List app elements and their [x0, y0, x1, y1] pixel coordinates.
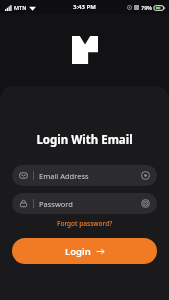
- staticText: Forgot password?: [57, 219, 113, 228]
- button[interactable]: Forgot password?: [12, 219, 157, 228]
- button[interactable]: Password: [12, 193, 157, 214]
- other: Clear email: [141, 171, 150, 180]
- staticText: MTN: [14, 4, 27, 11]
- staticText: 79%: [141, 4, 152, 11]
- other: Password: [19, 199, 28, 208]
- button[interactable]: Login: [12, 238, 157, 264]
- staticText: Login: [65, 245, 91, 258]
- staticText: Password: [39, 199, 141, 209]
- staticText: 3:43 PM: [73, 3, 96, 11]
- other: Email: [19, 171, 28, 180]
- staticText: Login With Email: [12, 132, 157, 148]
- button[interactable]: Email: [12, 165, 157, 186]
- other: Show password: [141, 199, 150, 208]
- staticText: Email Address: [39, 171, 141, 181]
